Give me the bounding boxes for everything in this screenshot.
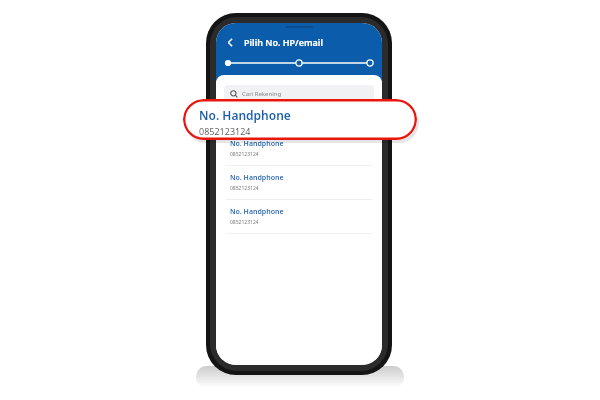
staticText: No. Handphone [199,107,291,123]
button[interactable]: No. Handphone [216,166,382,200]
staticText: 0852123124 [230,151,259,158]
staticText: 0852123124 [230,185,259,192]
staticText: 0852123124 [199,125,251,137]
staticText: No. Handphone [230,173,284,183]
staticText: 0852123124 [230,219,259,226]
staticText: Cari Rekening [242,90,282,98]
button[interactable]: No. Handphone [216,200,382,234]
button[interactable]: Cari Rekening [224,85,374,102]
button[interactable]: Back [222,34,238,50]
staticText: Pilih No. HP/email [244,36,323,48]
staticText: No. Handphone [230,139,284,149]
button[interactable]: No. Handphone [183,99,417,140]
staticText: No. Handphone [230,207,284,217]
button[interactable]: No. Handphone [216,132,382,166]
